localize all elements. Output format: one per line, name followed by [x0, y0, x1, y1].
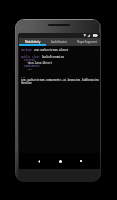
staticText: package [21, 48, 34, 51]
staticText: com.audiostream.components.ui.browsing.S… [21, 78, 100, 81]
staticText: com.audiostream.player [34, 48, 69, 51]
staticText: AudioStreaming [42, 55, 64, 58]
button[interactable]: Back [31, 153, 47, 169]
staticText: public class [21, 55, 42, 58]
staticText: extends [21, 58, 36, 61]
staticText: MainActivity [25, 40, 41, 44]
button[interactable]: Home [52, 153, 68, 169]
staticText: ... [21, 67, 32, 70]
staticText: implements [21, 64, 40, 67]
staticText: AudioService [51, 40, 68, 44]
button[interactable]: Recent apps [73, 153, 89, 169]
button[interactable]: MainActivity [19, 38, 46, 46]
staticText: PlayerFragment [77, 40, 97, 44]
staticText: Handler [21, 81, 32, 84]
staticText: ... [21, 75, 26, 78]
button[interactable]: PlayerFragment [73, 38, 100, 46]
button[interactable]: AudioService [46, 38, 73, 46]
staticText: java.lang.Object [21, 61, 53, 64]
